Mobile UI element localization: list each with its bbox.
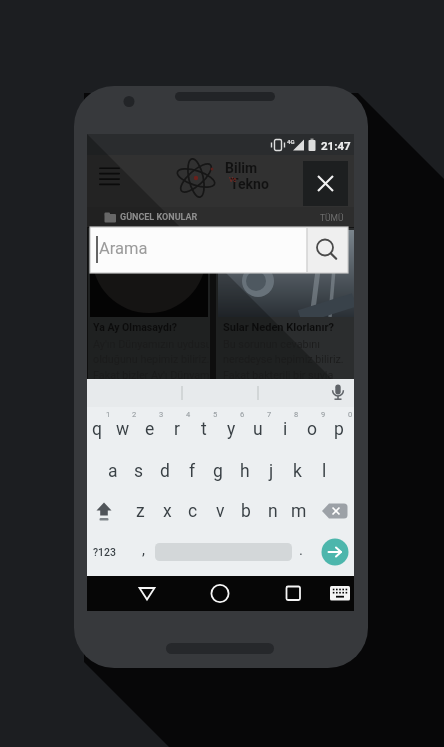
button[interactable]: b bbox=[233, 499, 259, 523]
staticText: neredeyse hepimiz biliriz. bbox=[223, 353, 344, 366]
button[interactable]: x bbox=[154, 499, 180, 523]
staticText: s bbox=[134, 461, 144, 482]
staticText: 8 bbox=[294, 410, 299, 419]
staticText: Bu sorunun cevabını bbox=[223, 338, 320, 351]
button[interactable]: d bbox=[152, 459, 178, 483]
button[interactable]: g bbox=[205, 459, 231, 483]
button[interactable]: y bbox=[218, 417, 244, 441]
button[interactable]: . bbox=[290, 538, 312, 562]
button[interactable]: s bbox=[126, 459, 152, 483]
staticText: Tekno bbox=[230, 176, 269, 192]
staticText: d bbox=[160, 461, 170, 482]
staticText: k bbox=[293, 461, 302, 482]
button[interactable] bbox=[328, 381, 348, 405]
button[interactable]: h bbox=[232, 459, 258, 483]
button[interactable]: p bbox=[326, 417, 352, 441]
button[interactable]: l bbox=[311, 459, 337, 483]
staticText: GÜNCEL KONULAR bbox=[120, 212, 198, 223]
staticText: 1 bbox=[106, 410, 111, 419]
staticText: j bbox=[269, 461, 274, 482]
button[interactable] bbox=[303, 161, 348, 206]
button[interactable]: ?123 bbox=[91, 541, 119, 563]
button[interactable] bbox=[216, 228, 354, 379]
staticText: y bbox=[227, 419, 236, 440]
staticText: w bbox=[116, 419, 130, 440]
button[interactable]: v bbox=[207, 499, 233, 523]
button[interactable]: w bbox=[110, 417, 136, 441]
staticText: 2 bbox=[132, 410, 137, 419]
staticText: 9 bbox=[321, 410, 326, 419]
button[interactable] bbox=[90, 227, 307, 273]
button[interactable]: TÜMÜ bbox=[312, 209, 344, 226]
button[interactable]: r bbox=[164, 417, 190, 441]
staticText: p bbox=[334, 419, 344, 440]
staticText: ?123 bbox=[93, 546, 117, 558]
button[interactable] bbox=[127, 578, 167, 610]
staticText: 6 bbox=[240, 410, 245, 419]
button[interactable] bbox=[273, 578, 313, 610]
staticText: 7 bbox=[267, 410, 272, 419]
button[interactable] bbox=[200, 578, 240, 610]
button[interactable]: f bbox=[179, 459, 205, 483]
staticText: TÜMÜ bbox=[320, 213, 344, 223]
staticText: n bbox=[268, 501, 278, 522]
staticText: h bbox=[240, 461, 250, 482]
button[interactable] bbox=[88, 228, 210, 379]
staticText: i bbox=[283, 419, 288, 440]
staticText: 4 bbox=[186, 410, 191, 419]
staticText: b bbox=[241, 501, 251, 522]
staticText: z bbox=[136, 501, 145, 522]
button[interactable]: k bbox=[284, 459, 310, 483]
staticText: r bbox=[174, 419, 180, 440]
staticText: l bbox=[322, 461, 327, 482]
staticText: 21:47 bbox=[321, 139, 351, 152]
button[interactable]: t bbox=[191, 417, 217, 441]
button[interactable] bbox=[93, 500, 117, 523]
staticText: q bbox=[92, 419, 102, 440]
staticText: v bbox=[216, 501, 225, 522]
staticText: x bbox=[163, 501, 172, 522]
staticText: u bbox=[253, 419, 263, 440]
button[interactable]: j bbox=[258, 459, 284, 483]
button[interactable]: z bbox=[127, 499, 153, 523]
staticText: Bilim bbox=[225, 160, 258, 176]
staticText: 5 bbox=[213, 410, 218, 419]
button[interactable]: c bbox=[180, 499, 206, 523]
staticText: e bbox=[145, 419, 155, 440]
staticText: m bbox=[291, 501, 307, 522]
staticText: Arama bbox=[99, 239, 148, 258]
button[interactable]: a bbox=[100, 459, 126, 483]
button[interactable]: i bbox=[272, 417, 298, 441]
staticText: t bbox=[201, 419, 207, 440]
button[interactable]: , bbox=[132, 538, 154, 562]
button[interactable]: e bbox=[137, 417, 163, 441]
staticText: o bbox=[307, 419, 317, 440]
button[interactable] bbox=[95, 160, 125, 192]
staticText: , bbox=[142, 541, 145, 559]
button[interactable] bbox=[307, 227, 348, 273]
staticText: Sular Neden Klorlanır? bbox=[223, 321, 334, 334]
button[interactable] bbox=[320, 500, 350, 523]
staticText: f bbox=[189, 461, 196, 482]
button[interactable]: u bbox=[245, 417, 271, 441]
staticText: 4G bbox=[287, 138, 295, 145]
staticText: a bbox=[108, 461, 118, 482]
staticText: c bbox=[188, 501, 198, 522]
button[interactable]: m bbox=[286, 499, 312, 523]
staticText: Ya Ay Olmasaydı? bbox=[93, 321, 178, 333]
staticText: Fakat bakterili bir suyla bbox=[223, 369, 334, 382]
button[interactable]: n bbox=[260, 499, 286, 523]
staticText: . bbox=[299, 541, 303, 559]
staticText: 0 bbox=[348, 410, 353, 419]
staticText: Fakat bizler Ay'ı Dünyamız bbox=[93, 369, 209, 382]
staticText: 3 bbox=[159, 410, 164, 419]
button[interactable] bbox=[322, 578, 360, 610]
staticText: Ve bbox=[229, 176, 237, 184]
button[interactable]: q bbox=[84, 417, 110, 441]
button[interactable] bbox=[321, 538, 349, 566]
button[interactable]: o bbox=[299, 417, 325, 441]
staticText: g bbox=[213, 461, 223, 482]
